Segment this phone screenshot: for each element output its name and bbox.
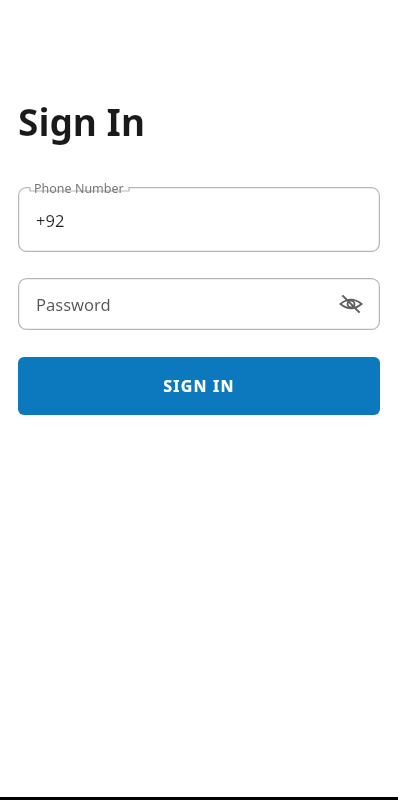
staticText: +92: [36, 209, 65, 231]
staticText: Sign In: [18, 96, 145, 146]
button[interactable]: Password: [18, 278, 380, 330]
staticText: Password: [36, 293, 111, 315]
button[interactable]: SIGN IN: [18, 357, 380, 415]
staticText: SIGN IN: [163, 375, 235, 397]
button[interactable]: Show password: [334, 287, 368, 321]
staticText: Phone Number: [34, 180, 124, 197]
button[interactable]: Phone Number: [18, 187, 380, 252]
